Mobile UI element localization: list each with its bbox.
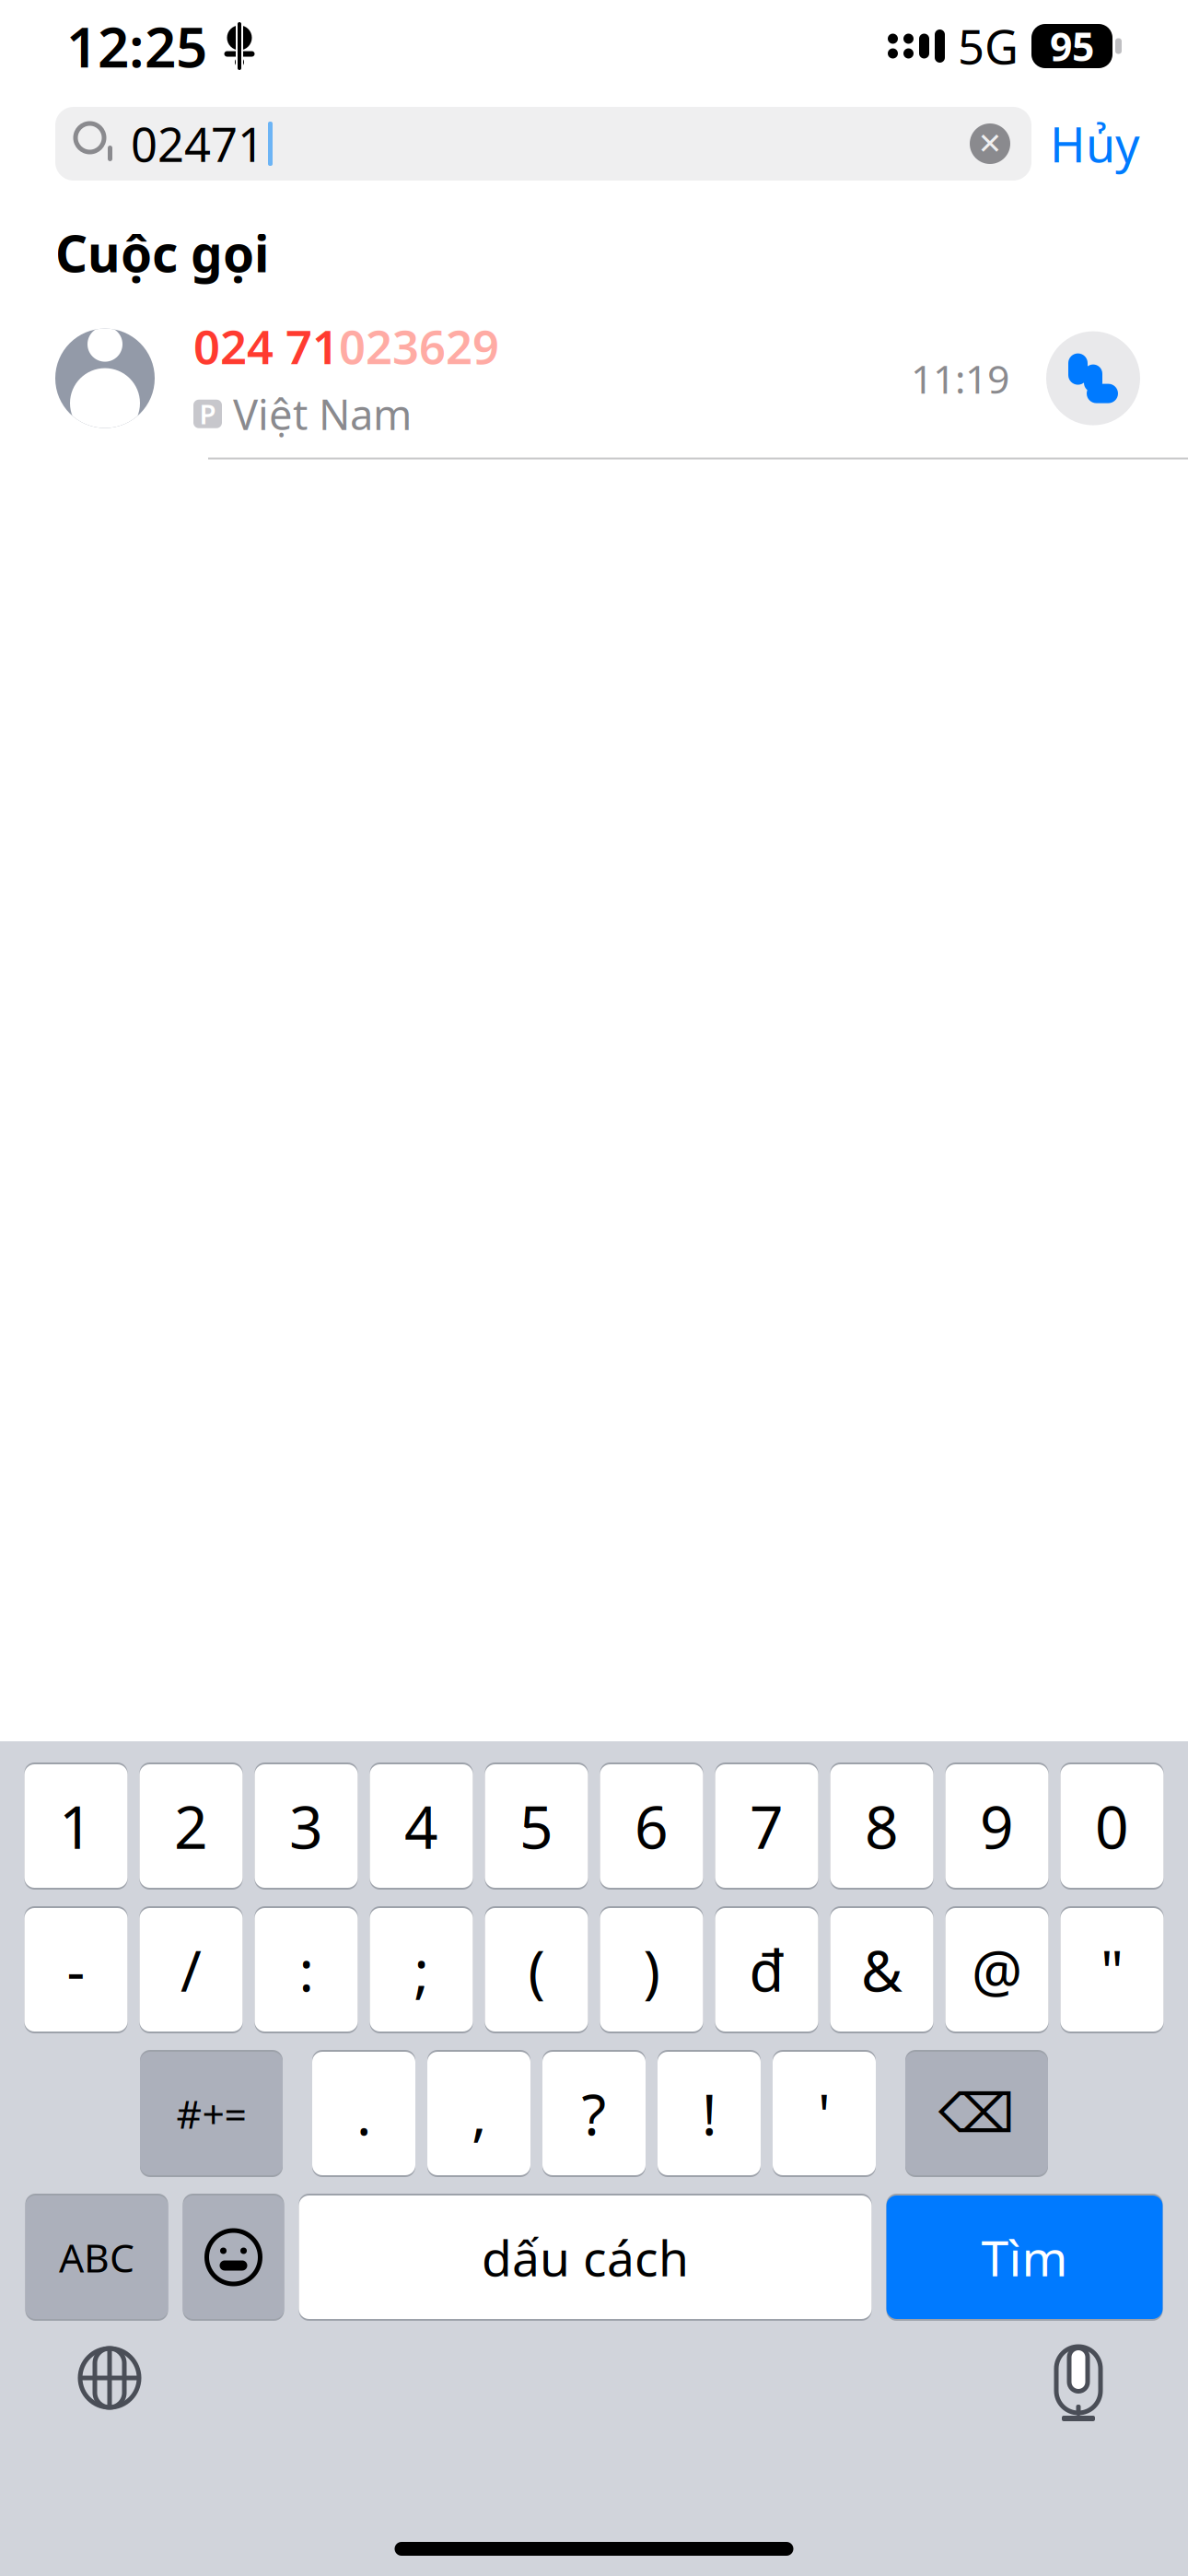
button[interactable]: Clear text xyxy=(956,108,1024,180)
button[interactable]: Change keyboard xyxy=(59,2327,160,2429)
button[interactable]: . xyxy=(312,2049,415,2178)
staticText: #+= xyxy=(176,2087,246,2140)
staticText: 2 xyxy=(174,1787,208,1865)
staticText: 12:25 xyxy=(66,9,207,83)
staticText: Tìm xyxy=(981,2225,1068,2290)
staticText: 8 xyxy=(865,1787,899,1865)
staticText: ! xyxy=(702,2076,716,2151)
staticText: Việt Nam xyxy=(233,386,412,442)
button[interactable]: ; xyxy=(370,1905,473,2034)
button[interactable]: @ xyxy=(945,1905,1048,2034)
staticText: ' xyxy=(818,2076,831,2151)
staticText: ; xyxy=(414,1932,429,2007)
staticText: : xyxy=(299,1932,314,2007)
staticText: 4 xyxy=(404,1787,438,1865)
staticText: ? xyxy=(582,2076,606,2151)
staticText: 3 xyxy=(289,1787,323,1865)
staticText: 02471 xyxy=(131,113,264,175)
staticText: @ xyxy=(972,1932,1022,2007)
staticText: ) xyxy=(643,1932,660,2007)
staticText: dấu cách xyxy=(482,2225,689,2290)
button[interactable]: 9 xyxy=(945,1762,1048,1891)
button[interactable]: 6 xyxy=(600,1762,703,1891)
button[interactable]: ( xyxy=(485,1905,588,2034)
staticText: 7 xyxy=(750,1787,784,1865)
button[interactable]: #+= xyxy=(140,2049,283,2178)
staticText: đ xyxy=(749,1932,784,2007)
staticText: - xyxy=(67,1932,85,2007)
staticText: P xyxy=(199,396,216,432)
button[interactable]: ' xyxy=(773,2049,876,2178)
staticText: / xyxy=(181,1932,202,2007)
button[interactable]: ? xyxy=(542,2049,646,2178)
staticText: ABC xyxy=(59,2231,134,2283)
staticText: ( xyxy=(528,1932,545,2007)
staticText: ✕ xyxy=(978,127,1002,160)
button[interactable]: / xyxy=(140,1905,243,2034)
button[interactable]: dấu cách xyxy=(299,2193,872,2322)
button[interactable]: Delete xyxy=(905,2049,1048,2178)
staticText: ⌫ xyxy=(938,2083,1015,2144)
button[interactable]: " xyxy=(1060,1905,1164,2034)
staticText: 1 xyxy=(59,1787,93,1865)
button[interactable]: 3 xyxy=(255,1762,358,1891)
staticText: 024 71 xyxy=(193,315,339,377)
staticText: 5G xyxy=(958,15,1019,77)
button[interactable]: 2 xyxy=(140,1762,243,1891)
button[interactable]: : xyxy=(255,1905,358,2034)
staticText: " xyxy=(1101,1932,1124,2007)
staticText: Cuộc gọi xyxy=(55,219,269,286)
button[interactable]: Tìm xyxy=(886,2193,1163,2322)
button[interactable]: đ xyxy=(715,1905,818,2034)
staticText: 9 xyxy=(980,1787,1014,1865)
button[interactable]: - xyxy=(24,1905,128,2034)
staticText: 95 xyxy=(1050,20,1094,72)
button[interactable]: Hủy xyxy=(1050,107,1140,181)
staticText: 023629 xyxy=(339,315,499,377)
button[interactable]: ) xyxy=(600,1905,703,2034)
staticText: . xyxy=(356,2076,371,2151)
button[interactable]: 4 xyxy=(370,1762,473,1891)
button[interactable]: 1 xyxy=(24,1762,128,1891)
button[interactable]: ! xyxy=(658,2049,761,2178)
staticText: 6 xyxy=(635,1787,669,1865)
button[interactable]: 5 xyxy=(485,1762,588,1891)
button[interactable]: Dictation xyxy=(1028,2327,1129,2429)
staticText: & xyxy=(861,1932,903,2007)
button[interactable]: & xyxy=(830,1905,933,2034)
staticText: 0 xyxy=(1095,1787,1129,1865)
staticText: 5 xyxy=(519,1787,553,1865)
button[interactable]: ABC xyxy=(25,2193,168,2322)
button[interactable]: 024 71 xyxy=(0,299,1188,459)
staticText: , xyxy=(472,2076,486,2151)
staticText: Hủy xyxy=(1050,112,1140,176)
button[interactable]: 0 xyxy=(1060,1762,1164,1891)
button[interactable]: , xyxy=(427,2049,530,2178)
button[interactable]: 7 xyxy=(715,1762,818,1891)
button[interactable]: Emoji xyxy=(183,2193,284,2322)
button[interactable]: 8 xyxy=(830,1762,933,1891)
staticText: 11:19 xyxy=(911,352,1009,404)
